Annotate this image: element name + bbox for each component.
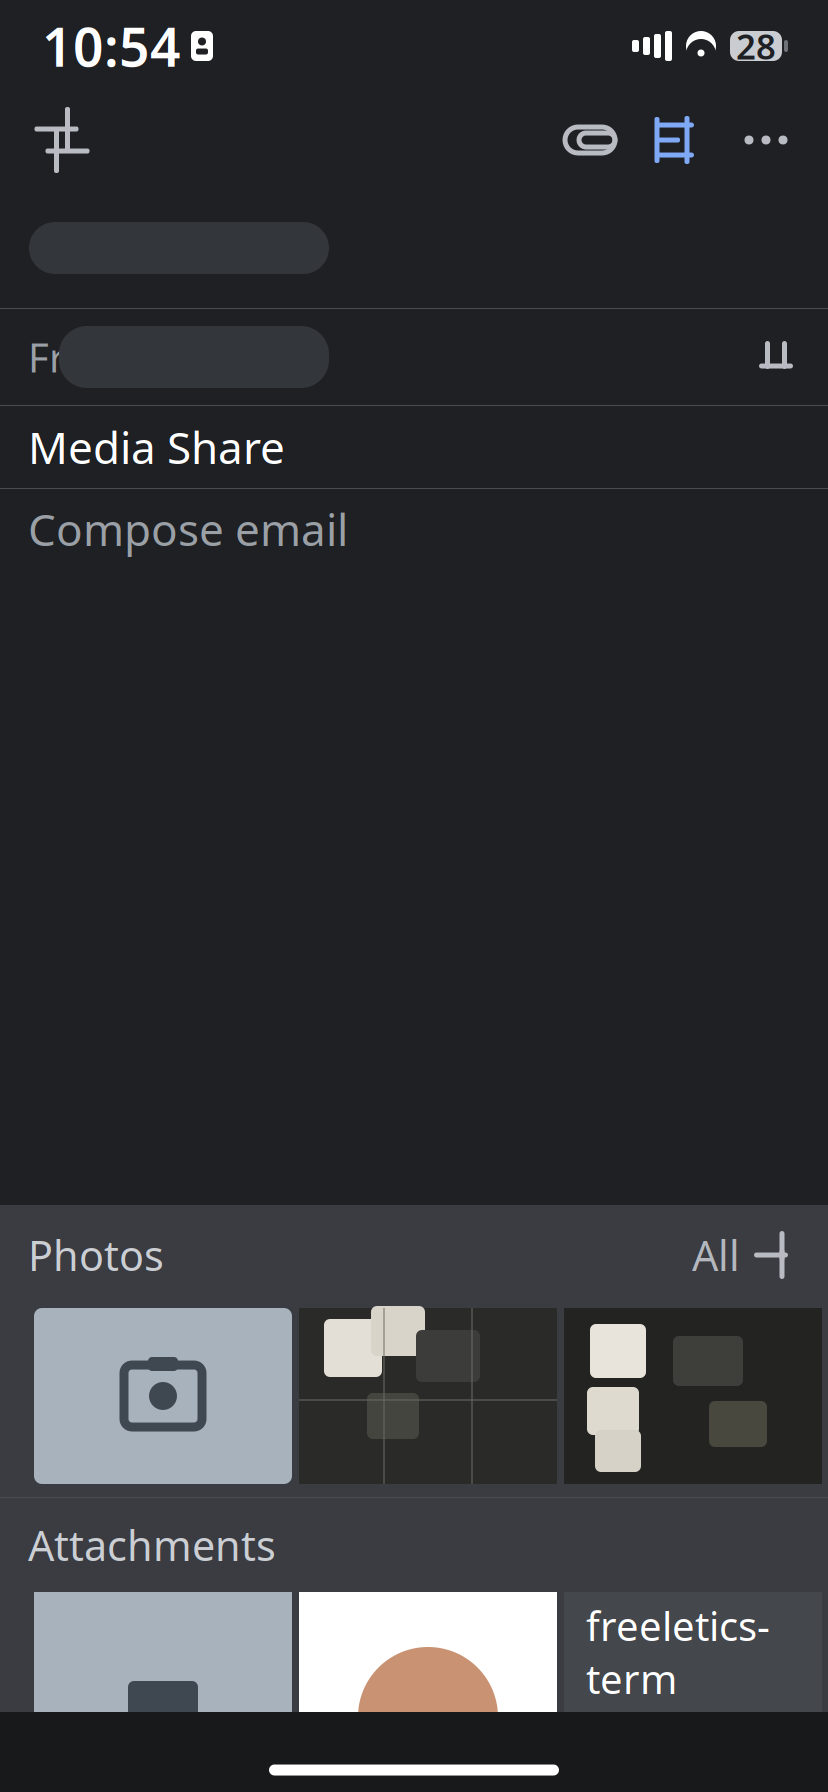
button[interactable]: More options bbox=[722, 96, 810, 184]
button[interactable]: Send bbox=[634, 96, 722, 184]
button[interactable]: Photo of a keyboard bbox=[564, 1308, 822, 1484]
button[interactable]: All bbox=[692, 1215, 828, 1295]
staticText: Media Share bbox=[28, 418, 285, 476]
staticText: Compose email bbox=[28, 500, 348, 558]
staticText: From bbox=[28, 330, 126, 383]
button[interactable]: freeletics terms document bbox=[564, 1592, 822, 1712]
staticText: 28 bbox=[736, 23, 776, 69]
button[interactable]: Take photo bbox=[34, 1308, 292, 1484]
staticText: Attachments bbox=[28, 1518, 276, 1572]
button[interactable]: Attachment bbox=[34, 1592, 292, 1712]
staticText: Photos bbox=[28, 1228, 164, 1282]
staticText: All bbox=[692, 1228, 740, 1282]
staticText: 10:54 bbox=[42, 11, 181, 81]
button[interactable]: Attach file bbox=[546, 96, 634, 184]
button[interactable]: Photo of a keyboard bbox=[299, 1308, 557, 1484]
staticText: freeletics-term bbox=[586, 1599, 770, 1705]
button[interactable]: Photo attachment bbox=[299, 1592, 557, 1712]
button[interactable]: Choose sender account bbox=[736, 317, 816, 397]
button[interactable]: Close bbox=[18, 96, 106, 184]
